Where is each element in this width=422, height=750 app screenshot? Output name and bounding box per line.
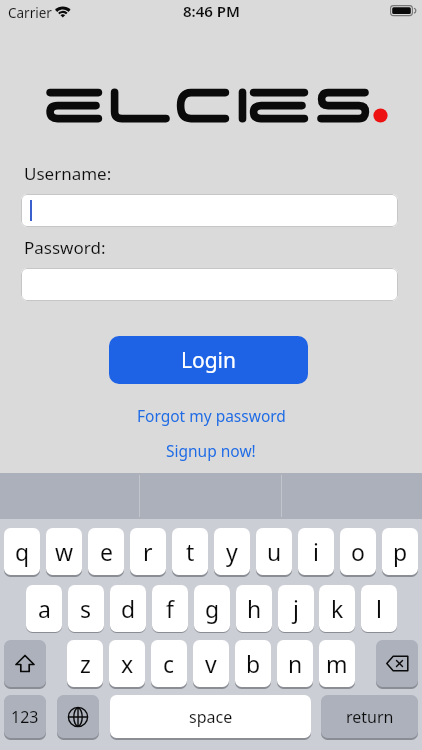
staticText: j <box>293 593 299 624</box>
staticText: e <box>100 536 113 567</box>
button[interactable]: j <box>278 585 314 632</box>
button[interactable]: c <box>151 640 187 687</box>
button[interactable]: r <box>130 528 166 575</box>
button[interactable] <box>21 268 398 301</box>
staticText: k <box>331 593 344 624</box>
button[interactable]: n <box>277 640 313 687</box>
button[interactable]: space <box>110 695 311 738</box>
staticText: g <box>205 593 220 624</box>
staticText: b <box>246 648 261 679</box>
button[interactable] <box>21 194 398 227</box>
button[interactable]: m <box>319 640 355 687</box>
staticText: p <box>393 536 408 567</box>
button[interactable]: Signup now! <box>166 440 256 461</box>
staticText: v <box>205 648 217 679</box>
staticText: space <box>189 706 233 728</box>
button[interactable]: s <box>68 585 104 632</box>
button[interactable]: x <box>109 640 145 687</box>
button[interactable]: 123 <box>4 695 46 738</box>
staticText: o <box>351 536 365 567</box>
staticText: Login <box>181 346 237 375</box>
button[interactable]: l <box>361 585 397 632</box>
button[interactable]: v <box>193 640 229 687</box>
button[interactable]: w <box>46 528 82 575</box>
button[interactable]: Login <box>109 336 308 384</box>
button[interactable]: q <box>4 528 40 575</box>
staticText: i <box>313 536 319 567</box>
staticText: h <box>247 593 262 624</box>
staticText: n <box>288 648 303 679</box>
staticText: x <box>121 648 134 679</box>
staticText: Carrier <box>8 4 52 22</box>
staticText: 8:46 PM <box>183 1 240 21</box>
staticText: r <box>143 536 153 567</box>
staticText: Forgot my password <box>137 405 286 426</box>
staticText: u <box>267 536 282 567</box>
button[interactable] <box>376 640 418 687</box>
staticText: q <box>15 536 30 567</box>
button[interactable]: e <box>88 528 124 575</box>
button[interactable]: a <box>26 585 62 632</box>
staticText: Password: <box>24 236 106 259</box>
button[interactable]: o <box>340 528 376 575</box>
button[interactable]: u <box>256 528 292 575</box>
button[interactable]: f <box>152 585 188 632</box>
staticText: w <box>55 536 74 567</box>
button[interactable] <box>57 695 99 738</box>
staticText: a <box>38 593 51 624</box>
button[interactable] <box>4 640 46 687</box>
button[interactable]: Forgot my password <box>137 405 286 426</box>
staticText: return <box>346 706 394 728</box>
staticText: s <box>80 593 92 624</box>
button[interactable]: k <box>319 585 355 632</box>
staticText: Username: <box>24 162 112 185</box>
button[interactable]: z <box>67 640 103 687</box>
staticText: z <box>80 648 91 679</box>
staticText: Signup now! <box>166 440 256 461</box>
staticText: m <box>326 648 348 679</box>
button[interactable]: h <box>236 585 272 632</box>
button[interactable]: i <box>298 528 334 575</box>
staticText: l <box>376 593 382 624</box>
staticText: d <box>121 593 136 624</box>
button[interactable]: return <box>321 695 418 738</box>
staticText: 123 <box>11 706 39 728</box>
button[interactable]: g <box>194 585 230 632</box>
button[interactable]: b <box>235 640 271 687</box>
button[interactable]: d <box>110 585 146 632</box>
staticText: y <box>226 536 238 567</box>
button[interactable]: p <box>382 528 418 575</box>
staticText: t <box>186 536 195 567</box>
button[interactable]: y <box>214 528 250 575</box>
staticText: c <box>163 648 175 679</box>
staticText: f <box>166 593 174 624</box>
button[interactable]: t <box>172 528 208 575</box>
